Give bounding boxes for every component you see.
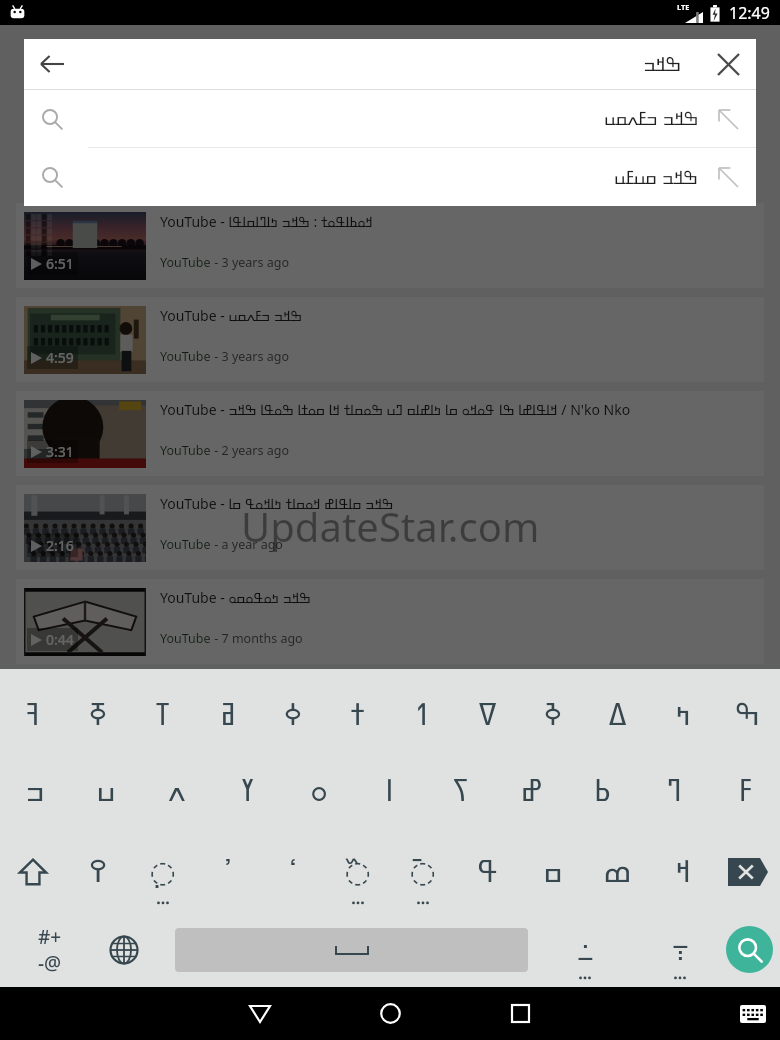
staticText: ߤ — [675, 697, 691, 732]
staticText: ߫ — [409, 854, 436, 889]
button[interactable]: Clear search — [700, 39, 756, 89]
button[interactable]: Back — [195, 987, 325, 1040]
staticText: #+ — [38, 924, 62, 950]
button[interactable]: ߕ — [567, 750, 638, 831]
button[interactable]: Space — [175, 928, 528, 972]
button[interactable]: Shift — [0, 831, 65, 912]
button[interactable]: Insert suggestion — [699, 148, 756, 206]
button[interactable]: ߸ — [528, 912, 642, 987]
button[interactable]: ߲ — [130, 831, 195, 912]
button[interactable]: ߧ — [65, 678, 130, 750]
button[interactable]: ߙ — [325, 678, 390, 750]
staticText: ߸ — [577, 932, 594, 967]
button[interactable]: ߝ — [496, 750, 567, 831]
button[interactable]: Recent apps — [455, 987, 585, 1040]
button[interactable]: Insert suggestion — [699, 90, 756, 147]
staticText: 3:31 — [46, 442, 74, 461]
staticText: 0:44 — [46, 630, 74, 649]
button[interactable]: ߏ — [0, 750, 70, 831]
button[interactable]: ߜ — [455, 678, 520, 750]
staticText: ߘ — [603, 854, 632, 889]
button[interactable]: ߌ — [212, 750, 283, 831]
button[interactable]: ߖ — [425, 750, 496, 831]
button[interactable]: Backspace — [715, 831, 780, 912]
staticText: 12:49 — [729, 2, 770, 24]
staticText: ߊ — [385, 773, 394, 808]
staticText: ߏ — [25, 773, 45, 808]
staticText: - 2 years ago — [211, 442, 290, 459]
button[interactable]: ߘ — [585, 831, 650, 912]
button[interactable]: ߟ — [455, 831, 520, 912]
button[interactable]: ߢ — [520, 678, 585, 750]
staticText: ߹ — [672, 932, 689, 967]
button[interactable]: Search — [726, 926, 773, 973]
staticText: - 3 years ago — [211, 348, 290, 365]
staticText: YouTube - ߒߞߏ ߤߋߟߋߛߋ — [160, 588, 311, 607]
staticText: ߞ — [675, 854, 691, 889]
button[interactable]: ߥ — [195, 678, 260, 750]
staticText: ߰ — [344, 854, 371, 889]
staticText: ߍ — [168, 773, 186, 808]
button[interactable]: 3:31 — [16, 391, 764, 476]
button[interactable]: ߤ — [650, 678, 715, 750]
button[interactable]: ߴ — [195, 831, 260, 912]
button[interactable]: ߫ — [390, 831, 455, 912]
staticText: ߦ — [284, 697, 302, 732]
staticText: YouTube - ߒߞߏ ߛߊߟߊߝ ߞߋߛߊߙ ߤߊߞߋߟ ߛߊ — [160, 494, 394, 513]
button[interactable]: ߓ — [709, 750, 780, 831]
staticText: ߲ — [149, 854, 176, 889]
button[interactable]: ߋ — [283, 750, 354, 831]
button[interactable]: 6:51 — [16, 203, 764, 288]
staticText: 2:16 — [46, 536, 74, 555]
staticText: ߢ — [544, 697, 562, 732]
staticText: ߴ — [223, 854, 233, 889]
button[interactable]: ߎ — [70, 750, 141, 831]
staticText: ߋ — [310, 773, 328, 808]
button[interactable]: ߰ — [325, 831, 390, 912]
button[interactable]: ߔ — [0, 678, 65, 750]
button[interactable]: ߦ — [260, 678, 325, 750]
staticText: 4:59 — [46, 348, 74, 367]
button[interactable]: ߒߞߏ ߏߓߍߛߎ — [24, 90, 756, 147]
button[interactable]: ߞ — [650, 831, 715, 912]
staticText: ߡ — [608, 697, 627, 732]
staticText: YouTube — [160, 348, 211, 365]
button[interactable]: 2:16 — [16, 485, 764, 570]
staticText: YouTube - ߞߋߕߊߟߋߙ : ߒߞߏ ߤߊߣߊߛߊߟߊ — [160, 212, 373, 231]
button[interactable]: ߍ — [141, 750, 212, 831]
button[interactable]: ߵ — [260, 831, 325, 912]
staticText: YouTube - ߞߊߟߊߝߊ ߒߊ ߟߋߞߋ ߛߊ ߤߊߝߊߛ ߣߎ ߒߋߛ… — [160, 400, 631, 419]
staticText: YouTube — [160, 536, 211, 553]
staticText: ߟ — [477, 854, 499, 889]
staticText: - 3 years ago — [211, 254, 290, 271]
button[interactable]: ߣ — [638, 750, 709, 831]
button[interactable]: ߒߞߏ ߛߎߓߎ — [24, 148, 756, 206]
button[interactable]: ߡ — [585, 678, 650, 750]
staticText: ߒߞߏ — [643, 53, 682, 75]
staticText: ߎ — [96, 773, 116, 808]
button[interactable]: Symbols — [0, 912, 100, 987]
staticText: ߉ — [88, 854, 108, 889]
staticText: ߛ — [543, 854, 563, 889]
button[interactable]: ߒ — [715, 678, 780, 750]
button[interactable]: ߠ — [130, 678, 195, 750]
staticText: ߓ — [738, 773, 752, 808]
staticText: -@ — [38, 950, 62, 976]
button[interactable]: ߊ — [354, 750, 425, 831]
staticText: ߠ — [155, 697, 170, 732]
button[interactable]: ߗ — [390, 678, 455, 750]
staticText: ߕ — [594, 773, 611, 808]
button[interactable]: Home — [325, 987, 455, 1040]
staticText: ߒ — [735, 697, 760, 732]
button[interactable]: ߉ — [65, 831, 130, 912]
staticText: ߖ — [451, 773, 470, 808]
button[interactable]: Change language — [100, 912, 148, 987]
button[interactable]: Switch keyboard — [740, 1005, 766, 1023]
staticText: YouTube - ߒߞߏ ߏߓߍߛߎ — [160, 306, 303, 325]
staticText: ߜ — [478, 697, 497, 732]
button[interactable]: 0:44 — [16, 579, 764, 664]
button[interactable]: ߛ — [520, 831, 585, 912]
button[interactable]: ߹ — [642, 912, 718, 987]
button[interactable]: 4:59 — [16, 297, 764, 382]
button[interactable]: Back — [24, 39, 80, 89]
